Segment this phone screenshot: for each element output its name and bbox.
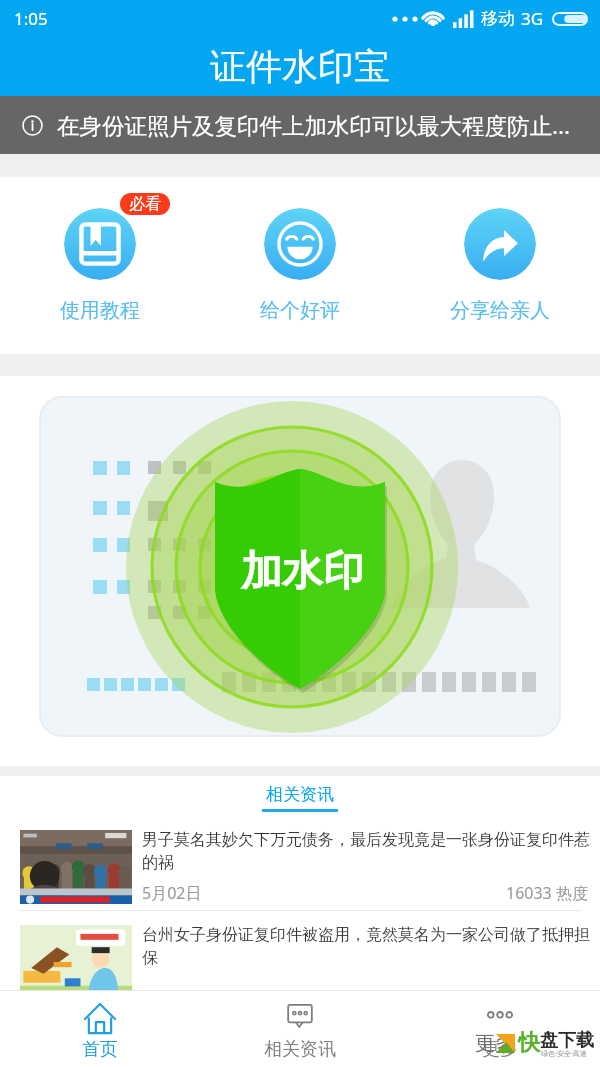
staticText: 相关资讯	[264, 1038, 336, 1061]
staticText: 绿色·安全·高速	[541, 1049, 587, 1059]
button[interactable]: 更多	[400, 991, 600, 1067]
button[interactable]: 相关资讯	[200, 991, 400, 1067]
staticText: 快	[518, 1029, 540, 1057]
staticText: 男子莫名其妙欠下万元债务，最后发现竟是一张身份证复印件惹的祸	[142, 830, 594, 873]
button[interactable]: 分享给亲人	[420, 177, 580, 323]
button[interactable]: 必看	[120, 193, 170, 215]
staticText: 相关资讯	[266, 784, 334, 805]
staticText: 证件水印宝	[210, 44, 390, 89]
staticText: 5月02日	[142, 882, 202, 904]
button[interactable]: 首页	[0, 991, 200, 1067]
button[interactable]: 加水印	[0, 376, 600, 766]
button[interactable]: 男子莫名其妙欠下万元债务，最后发现竟是一张身份证复印件惹的祸	[0, 816, 600, 910]
staticText: 3G	[521, 7, 544, 30]
staticText: 台州女子身份证复印件被盗用，竟然莫名为一家公司做了抵押担保	[142, 925, 594, 968]
staticText: 首页	[82, 1038, 118, 1061]
staticText: 盘下载	[540, 1029, 594, 1052]
staticText: 使用教程	[60, 298, 140, 323]
staticText: 在身份证照片及复印件上加水印可以最大程度防止...	[57, 110, 571, 141]
staticText: 给个好评	[260, 298, 340, 323]
button[interactable]: 使用教程	[20, 177, 180, 323]
button[interactable]: 给个好评	[220, 177, 380, 323]
staticText: 移动	[481, 8, 515, 29]
button[interactable]: 台州女子身份证复印件被盗用，竟然莫名为一家公司做了抵押担保	[0, 911, 600, 1005]
staticText: 16033 热度	[506, 882, 588, 904]
staticText: 更多	[475, 1031, 515, 1056]
button[interactable]: 在身份证照片及复印件上加水印可以最大程度防止...	[0, 96, 600, 154]
staticText: 分享给亲人	[450, 298, 550, 323]
staticText: 加水印	[241, 546, 364, 598]
staticText: 1:05	[14, 7, 48, 30]
staticText: 必看	[129, 194, 161, 214]
staticText: 更多	[482, 1038, 518, 1061]
